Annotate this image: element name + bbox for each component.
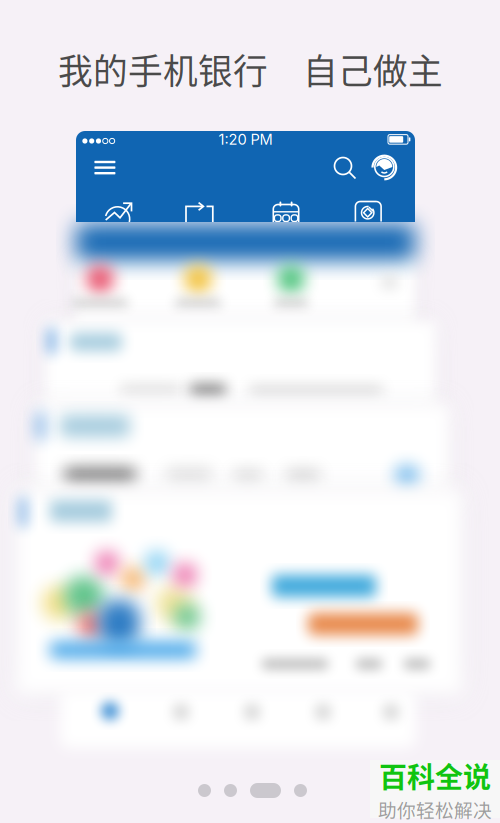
button[interactable]: Scan xyxy=(354,200,382,222)
button[interactable]: Menu xyxy=(94,161,115,174)
staticText: 百科全说 xyxy=(379,755,491,796)
button[interactable]: Bills xyxy=(272,201,299,224)
button[interactable]: Customer service xyxy=(373,156,397,181)
staticText: 1:20 PM xyxy=(218,131,272,148)
staticText: 助你轻松解决 xyxy=(378,796,492,823)
button[interactable]: Trends xyxy=(103,201,133,222)
staticText: 我的手机银行 自己做主 xyxy=(58,44,443,94)
button[interactable]: Transfer xyxy=(185,201,214,222)
button[interactable]: Search xyxy=(334,157,356,179)
